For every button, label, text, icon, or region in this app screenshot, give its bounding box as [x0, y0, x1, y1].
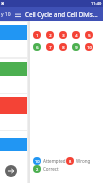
button[interactable]: 7 — [46, 43, 54, 51]
button[interactable]: 4 — [72, 31, 80, 39]
staticText: Correct — [43, 166, 59, 172]
staticText: 10 — [35, 159, 40, 164]
staticText: 5 — [88, 33, 91, 38]
button[interactable]: 2 — [33, 165, 59, 173]
staticText: 8 — [69, 159, 72, 164]
button[interactable]: Next — [5, 165, 17, 177]
staticText: 2 — [36, 167, 39, 172]
staticText: 8 — [62, 45, 65, 50]
button[interactable]: 2 — [46, 31, 54, 39]
button[interactable]: 10 — [33, 157, 66, 165]
button[interactable]: 6 — [33, 43, 41, 51]
staticText: y 10 — [1, 11, 11, 18]
staticText: 7 — [49, 45, 52, 50]
staticText: Wrong — [76, 158, 91, 164]
button[interactable]: 8 — [66, 157, 91, 165]
staticText: ✖ — [1, 1, 5, 6]
button[interactable] — [0, 94, 27, 130]
staticText: Cell Cycle and Cell Divis… — [25, 10, 98, 18]
staticText: 1 — [36, 33, 39, 38]
button[interactable]: 9 — [72, 43, 80, 51]
button[interactable]: 10 — [85, 43, 93, 51]
staticText: 6 — [36, 45, 39, 50]
staticText: 11:40 — [91, 1, 102, 6]
staticText: Attempted — [43, 158, 66, 164]
staticText: 3 — [62, 33, 65, 38]
staticText: 2 — [49, 33, 52, 38]
staticText: 10 — [87, 45, 92, 50]
button[interactable]: 8 — [59, 43, 67, 51]
button[interactable] — [0, 131, 27, 183]
button[interactable]: 3 — [59, 31, 67, 39]
button[interactable] — [0, 22, 27, 57]
staticText: 4 — [75, 33, 78, 38]
button[interactable]: Menu — [13, 10, 22, 19]
button[interactable] — [0, 59, 27, 93]
button[interactable]: 1 — [33, 31, 41, 39]
staticText: 9 — [75, 45, 78, 50]
button[interactable]: 5 — [85, 31, 93, 39]
